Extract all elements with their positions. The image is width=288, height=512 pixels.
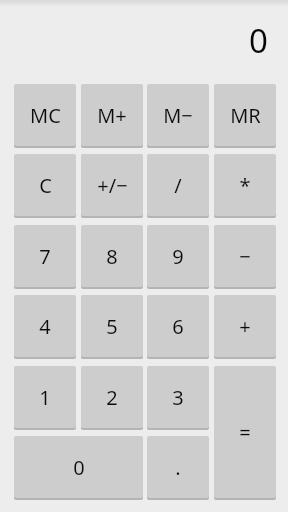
staticText: 8 bbox=[106, 243, 118, 270]
button[interactable]: . bbox=[147, 436, 209, 500]
button[interactable]: 4 bbox=[14, 295, 76, 359]
staticText: − bbox=[239, 243, 251, 270]
staticText: 9 bbox=[172, 243, 184, 270]
staticText: 0 bbox=[249, 18, 268, 63]
button[interactable]: 8 bbox=[81, 225, 143, 289]
staticText: 1 bbox=[39, 384, 51, 411]
staticText: = bbox=[239, 419, 251, 446]
staticText: * bbox=[239, 172, 251, 199]
button[interactable]: − bbox=[214, 225, 276, 289]
button[interactable]: M− bbox=[147, 84, 209, 148]
button[interactable]: = bbox=[214, 366, 276, 500]
button[interactable]: 2 bbox=[81, 366, 143, 430]
staticText: 4 bbox=[39, 313, 51, 340]
button[interactable]: C bbox=[14, 154, 76, 218]
staticText: MR bbox=[230, 102, 261, 129]
button[interactable]: 1 bbox=[14, 366, 76, 430]
button[interactable]: 6 bbox=[147, 295, 209, 359]
button[interactable]: M+ bbox=[81, 84, 143, 148]
button[interactable]: 0 bbox=[14, 436, 143, 500]
staticText: M− bbox=[163, 102, 193, 129]
button[interactable]: MR bbox=[214, 84, 276, 148]
staticText: 5 bbox=[106, 313, 118, 340]
button[interactable]: MC bbox=[14, 84, 76, 148]
staticText: / bbox=[174, 172, 182, 199]
staticText: + bbox=[239, 313, 251, 340]
button[interactable]: 9 bbox=[147, 225, 209, 289]
button[interactable]: +/− bbox=[81, 154, 143, 218]
button[interactable]: 7 bbox=[14, 225, 76, 289]
staticText: C bbox=[39, 172, 52, 199]
staticText: +/− bbox=[97, 172, 128, 199]
staticText: 7 bbox=[39, 243, 51, 270]
button[interactable]: * bbox=[214, 154, 276, 218]
staticText: 6 bbox=[172, 313, 184, 340]
staticText: M+ bbox=[97, 102, 127, 129]
button[interactable]: + bbox=[214, 295, 276, 359]
staticText: 3 bbox=[172, 384, 184, 411]
staticText: MC bbox=[30, 102, 61, 129]
staticText: . bbox=[175, 454, 181, 481]
button[interactable]: / bbox=[147, 154, 209, 218]
button[interactable]: 5 bbox=[81, 295, 143, 359]
button[interactable]: 3 bbox=[147, 366, 209, 430]
staticText: 2 bbox=[106, 384, 118, 411]
staticText: 0 bbox=[73, 454, 85, 481]
